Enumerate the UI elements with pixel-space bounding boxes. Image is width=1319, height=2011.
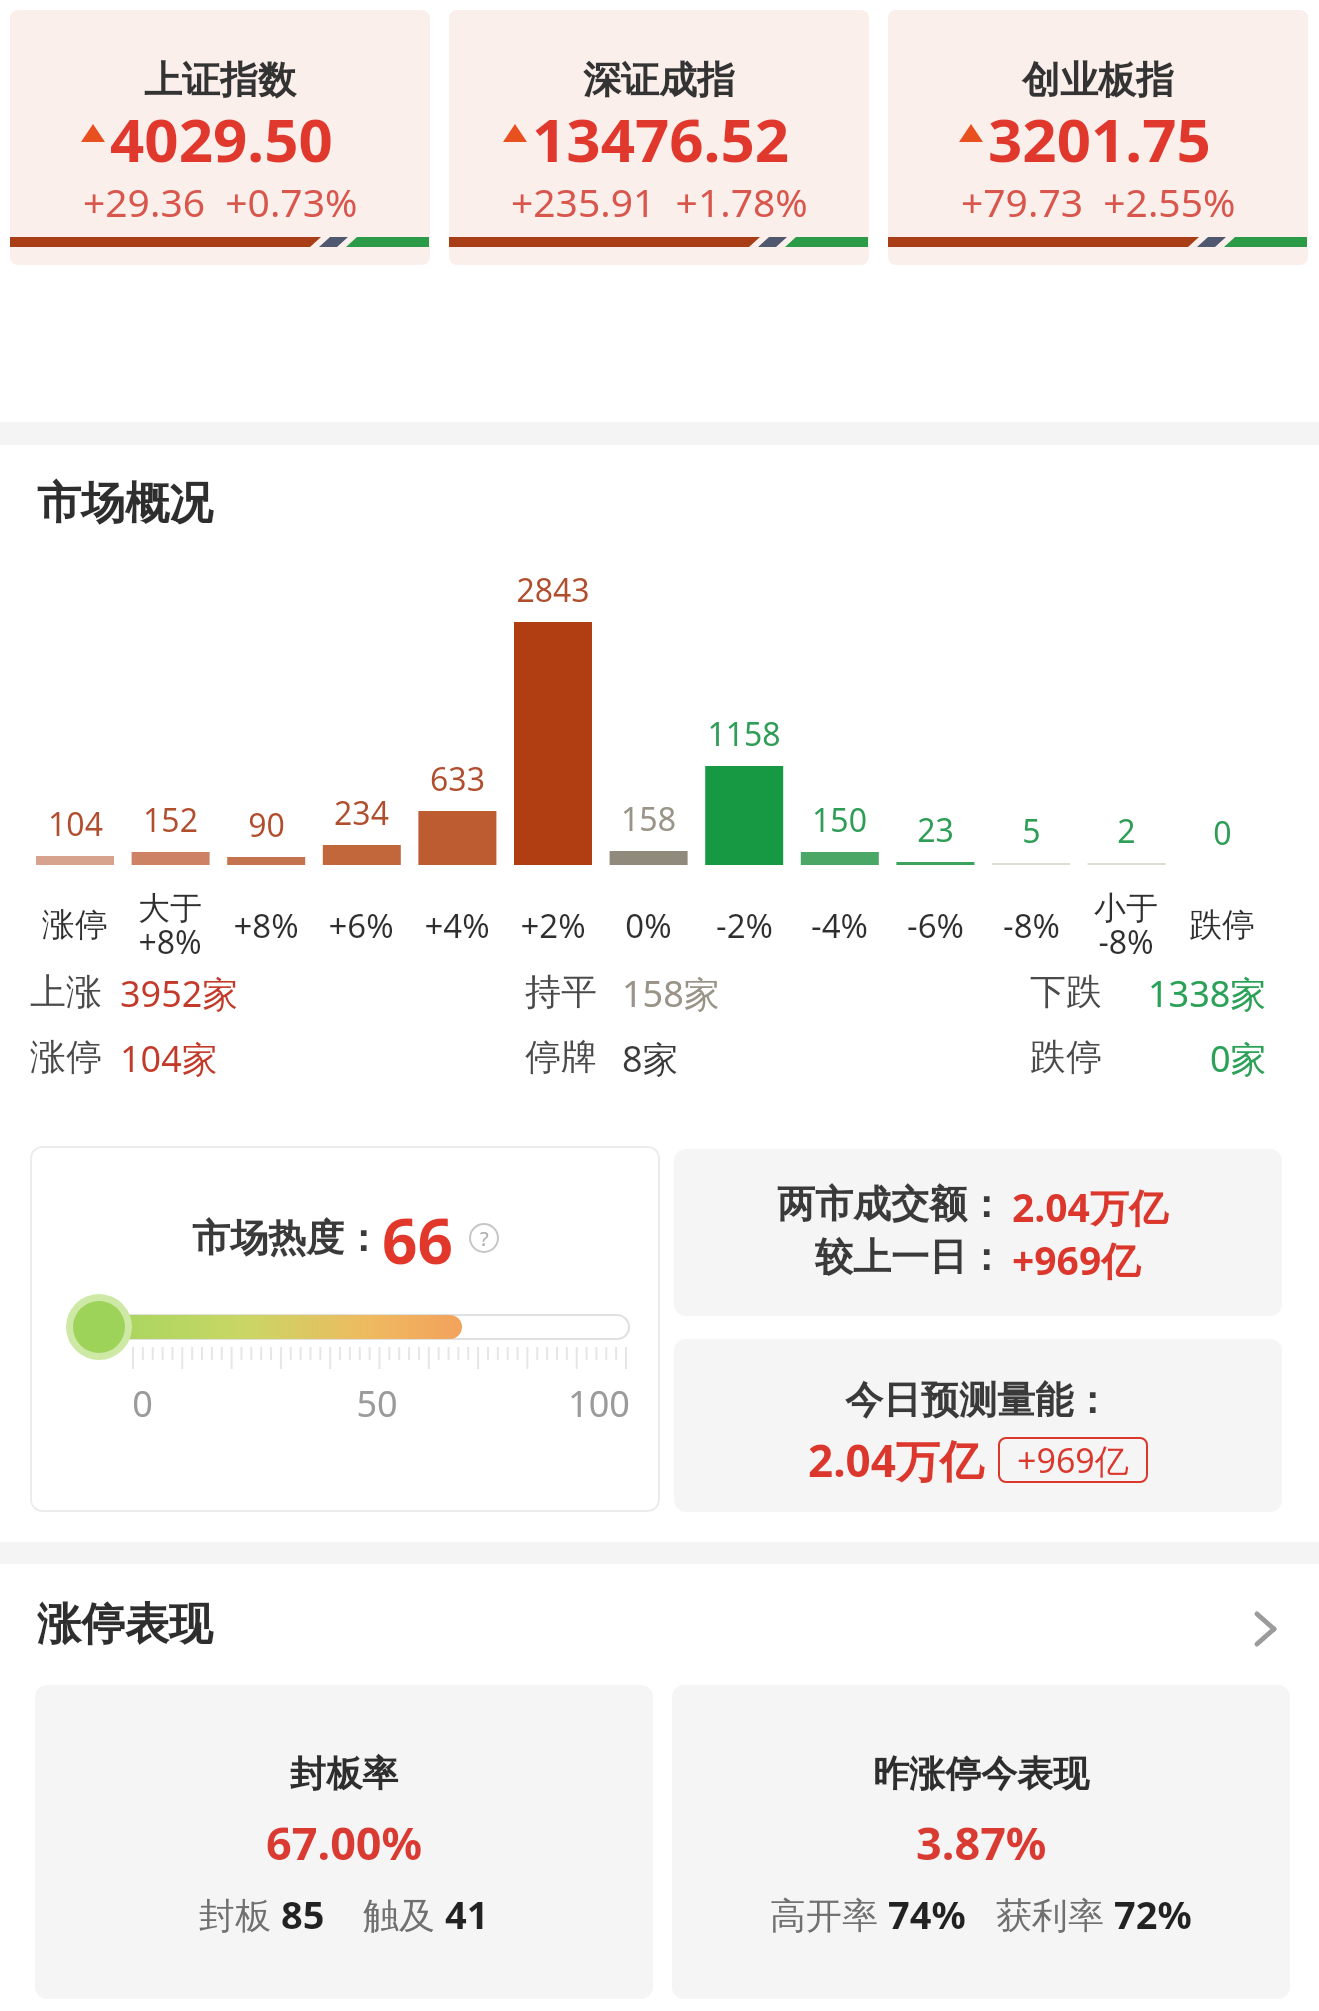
staticText: 上涨 (30, 969, 102, 1014)
staticText: 23 (917, 808, 954, 852)
staticText: 两市成交额： (777, 1180, 1005, 1228)
button[interactable]: 两市成交额： (674, 1149, 1282, 1316)
button[interactable]: 封板率 (35, 1685, 653, 1999)
staticText: 获利率 (996, 1890, 1114, 1939)
staticText: 涨停 (42, 904, 108, 946)
staticText: +6% (328, 903, 394, 948)
staticText: 涨停 (30, 1034, 102, 1079)
staticText: 1338家 (1148, 969, 1267, 1018)
staticText: 2 (1117, 809, 1136, 853)
staticText: -4% (811, 903, 868, 948)
staticText: 0% (625, 903, 672, 948)
staticText: 跌停 (1030, 1034, 1102, 1079)
staticText: 72% (1114, 1888, 1192, 1940)
staticText: 昨涨停今表现 (873, 1751, 1089, 1796)
staticText: 1158 (707, 712, 781, 756)
button[interactable]: 今日预测量能： (674, 1339, 1282, 1512)
staticText: +29.36 +0.73% (83, 175, 358, 228)
staticText: 跌停 (1189, 904, 1255, 946)
button[interactable]: 深证成指 (449, 10, 869, 265)
staticText: 158家 (622, 969, 720, 1018)
staticText: 2.04万亿 (1012, 1180, 1168, 1233)
staticText: 4029.50 (110, 98, 333, 168)
staticText: +235.91 +1.78% (511, 175, 808, 228)
staticText: 深证成指 (583, 56, 735, 104)
staticText: 大于 +8% (138, 888, 202, 963)
staticText: 0 (1213, 811, 1232, 855)
staticText: 3.87% (916, 1812, 1047, 1873)
button[interactable] (1239, 1604, 1299, 1654)
staticText: 市场概况 (37, 476, 213, 531)
staticText: 今日预测量能： (845, 1376, 1111, 1424)
staticText: 持平 (525, 969, 597, 1014)
staticText: 创业板指 (1022, 56, 1174, 104)
staticText: 2843 (516, 568, 590, 612)
button[interactable]: 市场热度： (30, 1146, 660, 1512)
staticText: ? (480, 1225, 489, 1252)
staticText: 停牌 (525, 1034, 597, 1079)
staticText: 234 (334, 791, 389, 835)
staticText: 小于 -8% (1094, 888, 1158, 963)
staticText: 74% (888, 1888, 966, 1940)
staticText: 85 (281, 1888, 325, 1940)
staticText: 633 (430, 757, 485, 801)
staticText: 涨停表现 (37, 1597, 213, 1652)
staticText: +969亿 (1012, 1233, 1141, 1286)
staticText: 封板 (199, 1890, 281, 1939)
staticText: -6% (907, 903, 964, 948)
button[interactable]: 上证指数 (10, 10, 430, 265)
staticText: +8% (233, 903, 299, 948)
staticText: 90 (248, 803, 285, 847)
staticText: 104家 (120, 1034, 218, 1083)
staticText: +4% (424, 903, 490, 948)
staticText: 市场热度： (192, 1214, 382, 1262)
staticText: 150 (812, 798, 867, 842)
staticText: 0家 (1210, 1034, 1267, 1083)
staticText: 较上一日： (815, 1233, 1005, 1281)
staticText: 3952家 (120, 969, 239, 1018)
staticText: 5 (1022, 809, 1041, 853)
staticText: 158 (621, 797, 676, 841)
staticText: 上证指数 (144, 56, 296, 104)
staticText: 封板率 (290, 1751, 398, 1796)
staticText: 100 (568, 1379, 630, 1428)
staticText: 高开率 (770, 1890, 888, 1939)
button[interactable]: 创业板指 (888, 10, 1308, 265)
staticText: +79.73 +2.55% (961, 175, 1236, 228)
staticText: 3201.75 (988, 98, 1211, 168)
staticText: 0 (132, 1379, 153, 1428)
staticText: -8% (1003, 903, 1060, 948)
staticText: 41 (445, 1888, 489, 1940)
staticText: +969亿 (1017, 1437, 1129, 1483)
staticText: 触及 (363, 1890, 445, 1939)
staticText: +2% (520, 903, 586, 948)
staticText: 152 (143, 798, 198, 842)
button[interactable]: 昨涨停今表现 (672, 1685, 1290, 1999)
staticText: 50 (356, 1379, 398, 1428)
staticText: 104 (48, 802, 103, 846)
staticText: 下跌 (1030, 969, 1102, 1014)
staticText: 66 (382, 1198, 453, 1278)
staticText: -2% (716, 903, 773, 948)
staticText: 2.04万亿 (808, 1430, 984, 1490)
staticText: 8家 (622, 1034, 679, 1083)
staticText: 67.00% (266, 1812, 423, 1873)
staticText: 13476.52 (532, 98, 790, 168)
